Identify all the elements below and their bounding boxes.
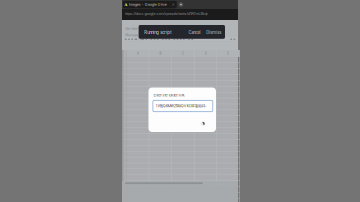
staticText: B <box>159 52 161 55</box>
staticText: A <box>137 52 139 55</box>
staticText: D <box>205 52 207 55</box>
staticText: 1vBjQ6Mw2tRuQVkc0Fqjuju3- <box>156 104 207 108</box>
button[interactable]: Images - Google Drive <box>123 1 177 8</box>
button[interactable]: Cancel <box>187 28 202 37</box>
staticText: Images - Google Drive <box>129 2 167 7</box>
button[interactable]: New tab <box>178 1 184 8</box>
staticText: Dismiss <box>206 30 221 35</box>
staticText: Running script <box>144 30 171 35</box>
staticText: Manage Add-ons <box>125 33 153 37</box>
staticText: C <box>182 52 184 55</box>
button[interactable]: Dismiss <box>205 28 222 37</box>
staticText: Cancel <box>188 30 200 35</box>
staticText: Enter the folder link <box>153 93 184 97</box>
button[interactable]: https://docs.google.com/spreadsheets/d/1… <box>122 9 238 20</box>
staticText: https://docs.google.com/spreadsheets/d/1… <box>125 12 208 16</box>
staticText: E <box>227 52 229 55</box>
staticText: Get Add-ons <box>125 27 145 31</box>
